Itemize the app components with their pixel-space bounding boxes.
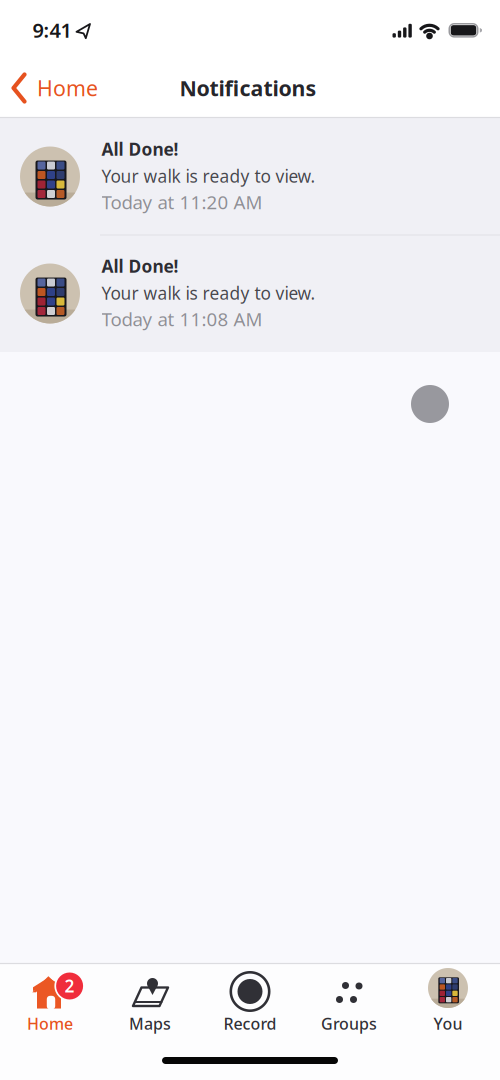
staticText: Groups <box>321 1013 377 1034</box>
button[interactable]: Maps <box>100 964 200 1080</box>
button[interactable]: All Done! <box>0 235 500 352</box>
staticText: Home <box>37 74 98 102</box>
staticText: Notifications <box>179 74 316 102</box>
staticText: 9:41 <box>32 17 71 43</box>
button[interactable]: 2 <box>0 964 100 1080</box>
staticText: Maps <box>129 1013 171 1034</box>
staticText: Record <box>223 1013 276 1034</box>
button[interactable]: Home <box>8 64 120 112</box>
staticText: Your walk is ready to view. <box>101 164 315 187</box>
staticText: 2 <box>65 974 75 997</box>
staticText: Home <box>27 1013 73 1034</box>
staticText: All Done! <box>101 254 178 277</box>
button[interactable]: Groups <box>300 964 400 1080</box>
staticText: Today at 11:08 AM <box>101 307 262 331</box>
staticText: You <box>433 1013 462 1034</box>
button[interactable]: You <box>400 964 500 1080</box>
button[interactable]: All Done! <box>0 118 500 235</box>
staticText: Today at 11:20 AM <box>101 190 262 214</box>
staticText: Your walk is ready to view. <box>101 281 315 304</box>
button[interactable]: Record <box>200 964 300 1080</box>
staticText: All Done! <box>101 137 178 160</box>
